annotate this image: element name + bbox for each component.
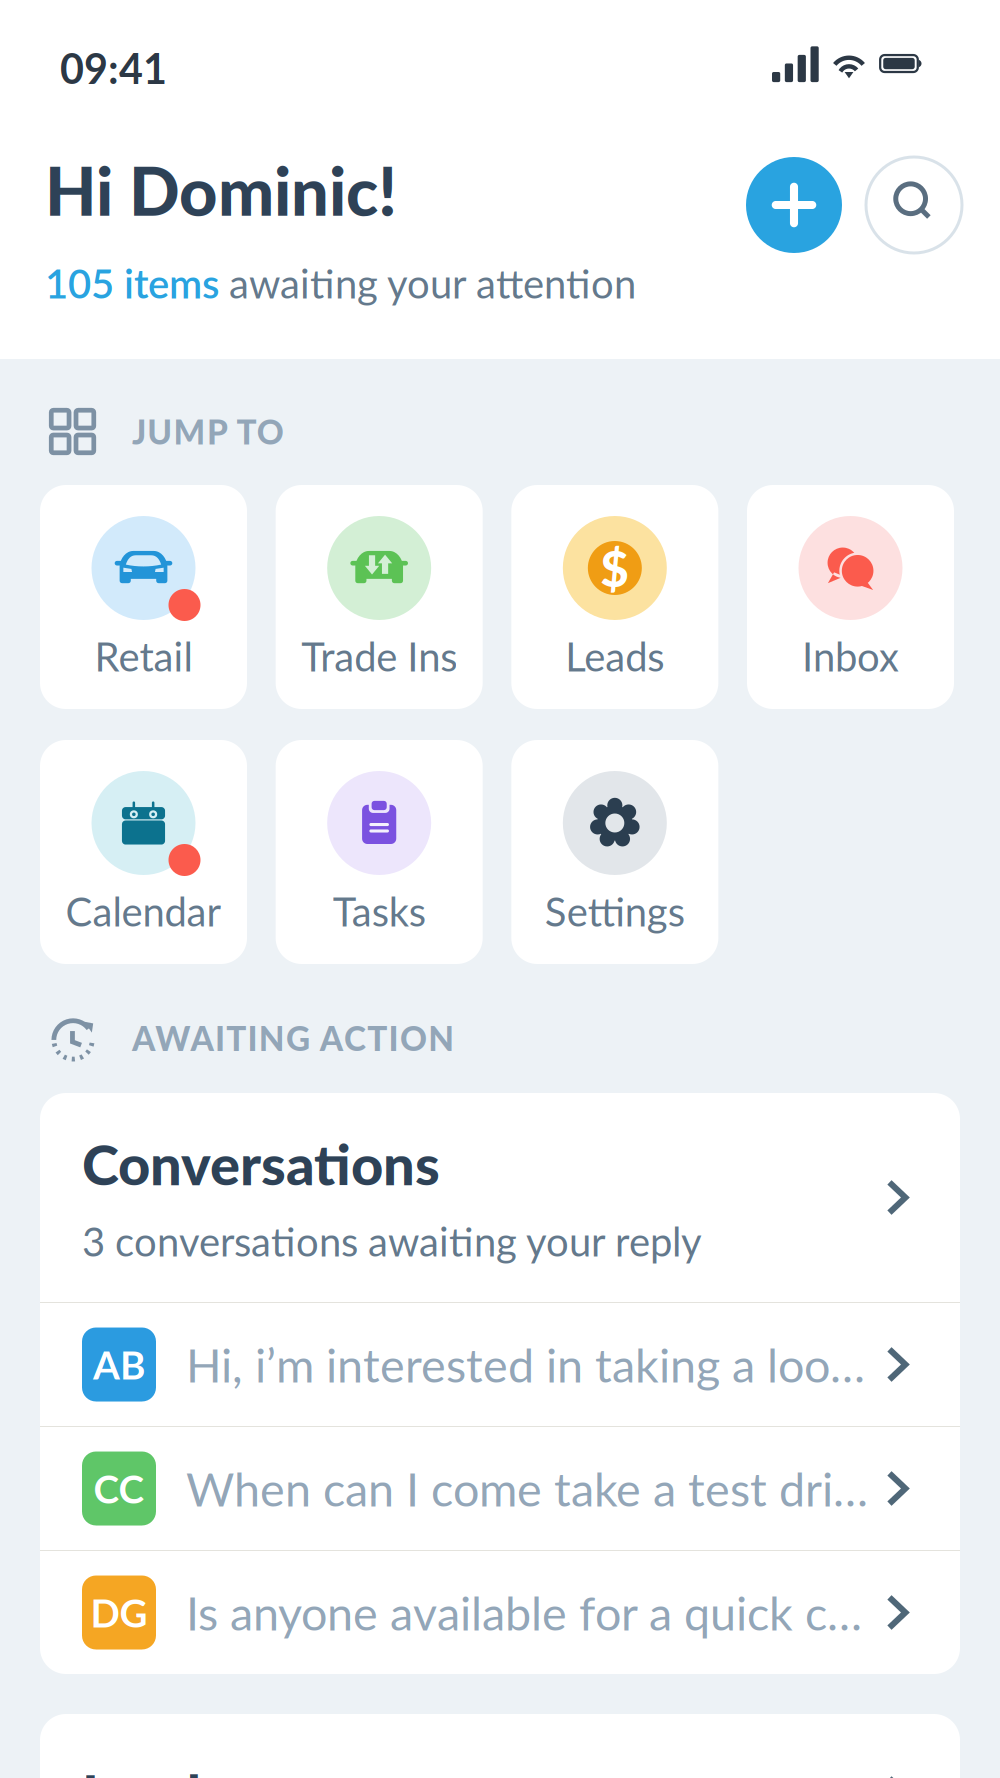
button[interactable]: Inbox [747, 485, 954, 709]
staticText: awaiting your attention [229, 259, 636, 307]
button[interactable]: CC [40, 1427, 960, 1550]
staticText: When can I come take a test drive of … [186, 1460, 868, 1516]
button[interactable]: Trade Ins [276, 485, 483, 709]
staticText: Trade Ins [301, 632, 457, 680]
staticText: AB [93, 1341, 145, 1388]
button[interactable]: Calendar [40, 740, 247, 964]
staticText: $ [600, 538, 629, 598]
button[interactable]: DG [40, 1551, 960, 1674]
button[interactable]: $ [511, 485, 718, 709]
button[interactable]: Conversations [40, 1093, 960, 1302]
button[interactable]: Retail [40, 485, 247, 709]
staticText: 09:41 [60, 43, 167, 93]
button[interactable]: Add [746, 157, 842, 253]
staticText: Hi Dominic! [45, 150, 397, 230]
staticText: Hi, i’m interested in taking a look at t… [186, 1336, 868, 1392]
staticText: JUMP TO [132, 411, 284, 451]
staticText: Retail [94, 632, 192, 680]
staticText: Settings [545, 887, 685, 935]
staticText: CC [93, 1465, 144, 1512]
staticText: Leads [565, 632, 664, 680]
staticText: DG [90, 1589, 147, 1636]
button[interactable]: Leads [40, 1714, 960, 1778]
staticText: Is anyone available for a quick chat on… [186, 1584, 868, 1640]
button[interactable]: AB [40, 1303, 960, 1426]
staticText: Leads [82, 1760, 226, 1778]
staticText: Conversations [82, 1130, 440, 1197]
staticText: 3 conversations awaiting your reply [82, 1217, 702, 1265]
button[interactable]: Search [866, 157, 962, 253]
button[interactable]: Settings [511, 740, 718, 964]
staticText: 105 items [45, 259, 229, 307]
staticText: Inbox [802, 632, 899, 680]
button[interactable]: Tasks [276, 740, 483, 964]
staticText: Calendar [65, 887, 221, 935]
staticText: AWAITING ACTION [132, 1018, 454, 1058]
staticText: Tasks [333, 887, 426, 935]
